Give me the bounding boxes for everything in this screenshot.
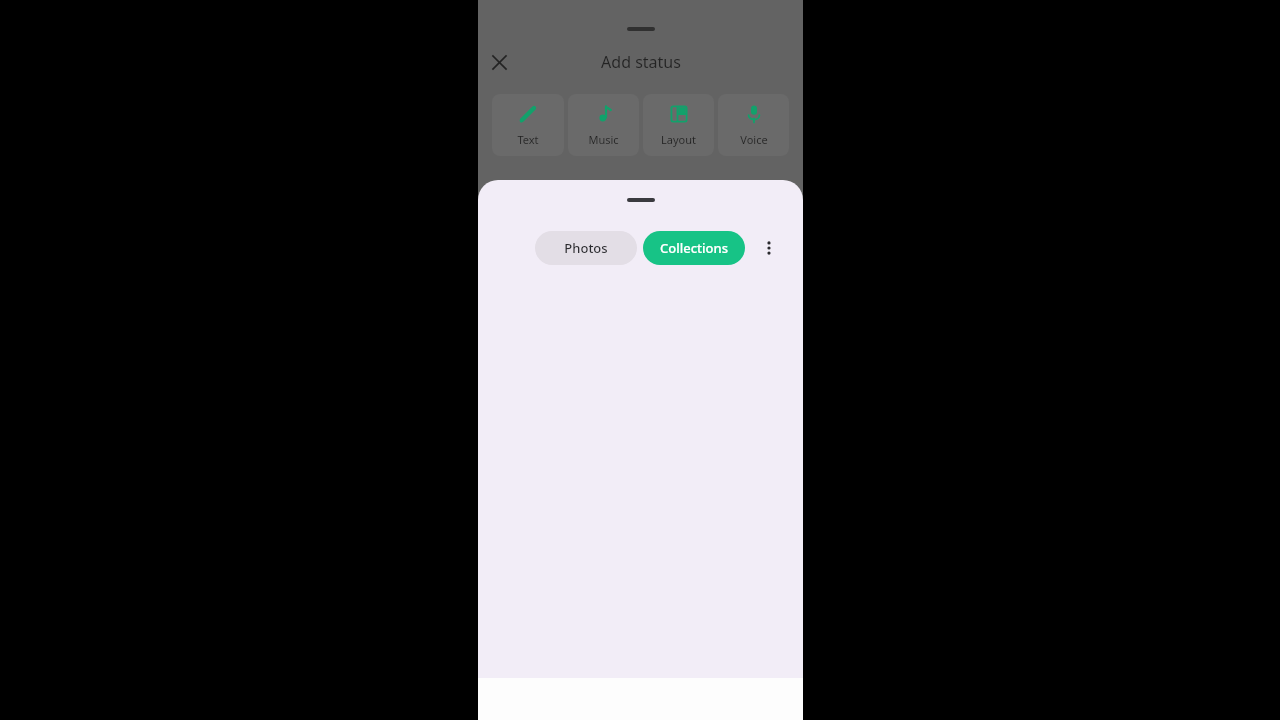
staticText: Add status (601, 51, 681, 73)
staticText: Voice (740, 132, 768, 147)
button[interactable]: Photos (535, 231, 637, 265)
button[interactable]: Layout (643, 94, 714, 156)
button[interactable]: Voice (718, 94, 789, 156)
staticText: Music (588, 132, 619, 147)
button[interactable]: Text (492, 94, 564, 156)
button[interactable]: Music (568, 94, 639, 156)
staticText: Layout (661, 132, 696, 147)
staticText: Photos (564, 239, 608, 257)
button[interactable]: More options (757, 236, 781, 260)
button[interactable]: Close (487, 50, 511, 74)
staticText: Collections (660, 239, 728, 257)
staticText: Text (517, 132, 539, 147)
button[interactable]: Collections (643, 231, 745, 265)
